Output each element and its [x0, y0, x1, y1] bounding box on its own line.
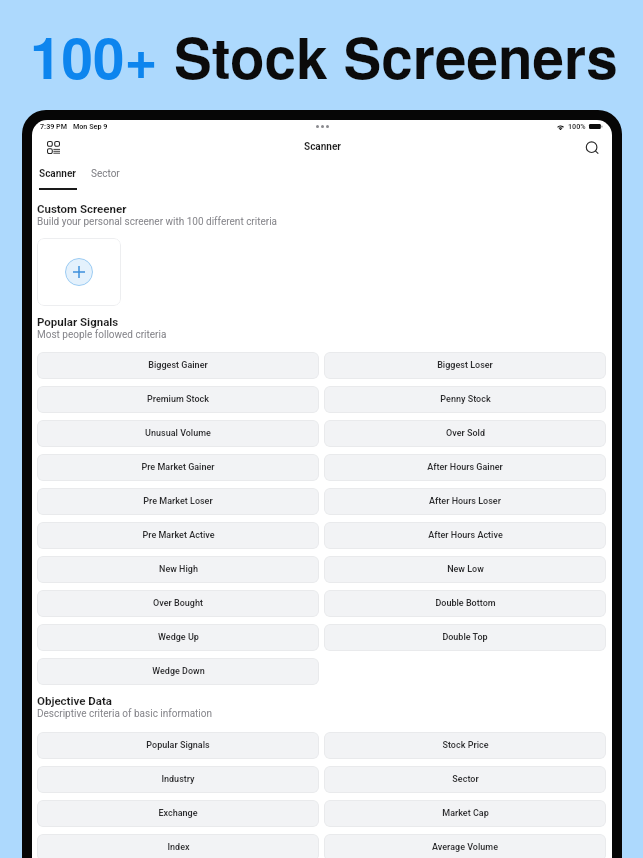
staticText: Sector — [91, 168, 120, 180]
staticText: Index — [167, 842, 190, 853]
button[interactable]: Index — [37, 834, 319, 858]
button[interactable]: Sector — [91, 168, 120, 180]
button[interactable]: New High — [37, 556, 319, 583]
button[interactable]: Exchange — [37, 800, 319, 827]
button[interactable]: Industry — [37, 766, 319, 793]
staticText: Objective Data — [37, 694, 113, 707]
staticText: Industry — [161, 774, 195, 785]
button[interactable]: Over Sold — [324, 420, 606, 447]
button[interactable]: Pre Market Active — [37, 522, 319, 549]
staticText: 100+ — [30, 15, 174, 96]
staticText: New High — [159, 564, 198, 575]
staticText: Unusual Volume — [145, 428, 211, 439]
staticText: Custom Screener — [37, 202, 127, 215]
staticText: After Hours Loser — [429, 496, 501, 507]
staticText: After Hours Active — [428, 530, 503, 541]
staticText: Stock Screeners — [174, 15, 618, 96]
button[interactable]: Average Volume — [324, 834, 606, 858]
button[interactable]: Over Bought — [37, 590, 319, 617]
staticText: Popular Signals — [146, 740, 210, 751]
staticText: Scanner — [304, 141, 341, 153]
staticText: Double Top — [442, 632, 488, 643]
staticText: Pre Market Loser — [143, 496, 213, 507]
staticText: Descriptive criteria of basic informatio… — [37, 708, 213, 720]
button[interactable]: Stock Price — [324, 732, 606, 759]
staticText: Scanner — [39, 168, 76, 180]
button[interactable]: Double Bottom — [324, 590, 606, 617]
button[interactable]: Double Top — [324, 624, 606, 651]
staticText: Pre Market Active — [142, 530, 215, 541]
staticText: Pre Market Gainer — [141, 462, 215, 473]
button[interactable]: Unusual Volume — [37, 420, 319, 447]
button[interactable]: Search — [582, 138, 600, 156]
staticText: Stock Price — [442, 740, 489, 751]
staticText: Penny Stock — [440, 394, 491, 405]
button[interactable]: Sector — [324, 766, 606, 793]
button[interactable]: Add custom screener — [37, 238, 121, 306]
staticText: Popular Signals — [37, 315, 119, 328]
staticText: Wedge Up — [158, 632, 199, 643]
button[interactable]: After Hours Loser — [324, 488, 606, 515]
staticText: Over Sold — [446, 428, 485, 439]
staticText: Biggest Gainer — [148, 360, 208, 371]
staticText: Average Volume — [432, 842, 498, 853]
button[interactable]: Scanner — [39, 168, 77, 180]
button[interactable]: Premium Stock — [37, 386, 319, 413]
staticText: Sector — [452, 774, 479, 785]
button[interactable]: After Hours Active — [324, 522, 606, 549]
staticText: Premium Stock — [147, 394, 209, 405]
button[interactable]: Pre Market Gainer — [37, 454, 319, 481]
button[interactable]: New Low — [324, 556, 606, 583]
staticText: After Hours Gainer — [427, 462, 503, 473]
button[interactable]: Market Cap — [324, 800, 606, 827]
staticText: Biggest Loser — [437, 360, 493, 371]
staticText: Wedge Down — [152, 666, 205, 677]
staticText: Build your personal screener with 100 di… — [37, 216, 278, 228]
button[interactable]: Biggest Loser — [324, 352, 606, 379]
staticText: 100% — [568, 122, 586, 130]
button[interactable]: Biggest Gainer — [37, 352, 319, 379]
button[interactable]: Popular Signals — [37, 732, 319, 759]
button[interactable]: Wedge Up — [37, 624, 319, 651]
button[interactable]: Penny Stock — [324, 386, 606, 413]
staticText: Double Bottom — [435, 598, 496, 609]
button[interactable]: Wedge Down — [37, 658, 319, 685]
staticText: Over Bought — [153, 598, 203, 609]
staticText: 7:39 — [40, 122, 55, 130]
staticText: Mon Sep 9 — [73, 122, 108, 130]
button[interactable]: After Hours Gainer — [324, 454, 606, 481]
staticText: New Low — [447, 564, 484, 575]
staticText: PM — [56, 122, 67, 130]
button[interactable]: Pre Market Loser — [37, 488, 319, 515]
staticText: Exchange — [158, 808, 198, 819]
button[interactable]: Menu — [43, 137, 63, 157]
staticText: Market Cap — [442, 808, 489, 819]
staticText: Most people followed criteria — [37, 329, 167, 341]
